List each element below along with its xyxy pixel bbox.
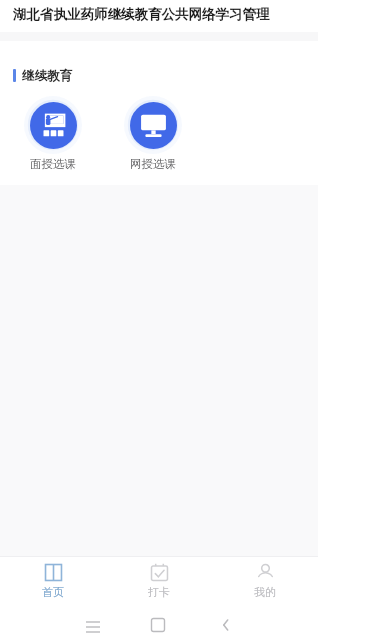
staticText: 打卡 [148,585,170,599]
button[interactable]: 面授选课 [18,96,88,171]
button[interactable]: 网授选课 [118,96,188,171]
staticText: 面授选课 [30,157,76,171]
button[interactable]: Back [219,618,233,632]
button[interactable]: Recent apps [85,619,101,635]
button[interactable]: Home [151,618,165,632]
staticText: 网授选课 [130,157,176,171]
staticText: 首页 [42,585,64,599]
button[interactable]: 打卡 [106,556,212,606]
button[interactable]: 首页 [0,556,106,606]
staticText: 湖北省执业药师继续教育公共网络学习管理 [13,6,270,23]
staticText: 继续教育 [22,68,72,84]
staticText: 我的 [254,585,276,599]
button[interactable]: 我的 [212,556,318,606]
